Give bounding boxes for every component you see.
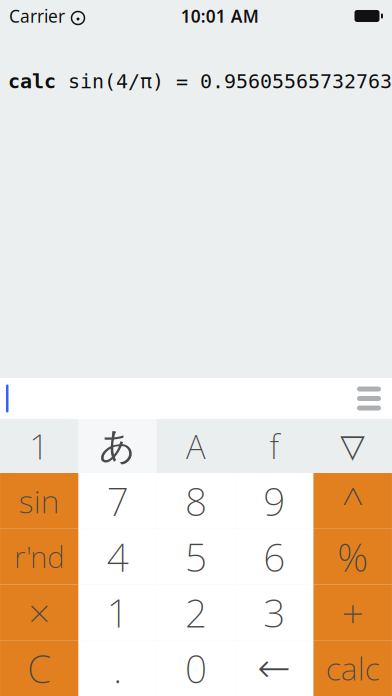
staticText: 0 (185, 642, 207, 694)
button[interactable]: ▽ (314, 419, 392, 473)
staticText: 10:01 AM (181, 4, 259, 27)
button[interactable]: f (235, 419, 314, 473)
button[interactable]: 6 (235, 529, 313, 585)
button[interactable]: 5 (157, 529, 235, 585)
button[interactable]: 4 (78, 529, 157, 585)
button[interactable]: Menu (346, 377, 392, 419)
staticText: Carrier (9, 4, 65, 27)
staticText: % (337, 531, 368, 582)
button[interactable]: 7 (78, 473, 157, 529)
staticText: 4 (107, 531, 129, 582)
button[interactable]: r'nd (0, 529, 78, 585)
staticText: calc (8, 70, 56, 93)
staticText: 9 (263, 475, 285, 526)
staticText: ▽ (340, 428, 365, 464)
button[interactable]: calc (313, 640, 392, 696)
staticText: sin(4/π) = 0.95605565732763 (56, 70, 392, 93)
button[interactable]: C (0, 640, 78, 696)
button[interactable]: 1 (0, 419, 78, 473)
staticText: 7 (107, 475, 129, 526)
button[interactable]: ← (235, 640, 313, 696)
staticText: 3 (263, 587, 285, 638)
staticText: 2 (185, 587, 207, 638)
button[interactable]: 0 (157, 640, 235, 696)
button[interactable]: × (0, 584, 78, 640)
staticText: + (342, 587, 364, 638)
staticText: 1 (29, 423, 49, 469)
button[interactable]: 8 (157, 473, 235, 529)
staticText: 8 (185, 475, 207, 526)
button[interactable]: sin (0, 473, 78, 529)
staticText: A (186, 424, 206, 468)
staticText: . (113, 642, 122, 694)
button[interactable]: 9 (235, 473, 313, 529)
staticText: f (269, 424, 279, 468)
staticText: C (27, 642, 51, 694)
staticText: 6 (263, 531, 285, 582)
button[interactable]: . (78, 640, 157, 696)
staticText: calc (326, 647, 380, 689)
button[interactable]: 3 (235, 584, 313, 640)
staticText: sin (19, 480, 60, 522)
staticText: あ (99, 424, 136, 468)
button[interactable]: 1 (78, 584, 157, 640)
staticText: r'nd (14, 537, 64, 576)
button[interactable]: 2 (157, 584, 235, 640)
button[interactable]: % (313, 529, 392, 585)
staticText: 1 (107, 587, 129, 638)
staticText: ^ (342, 475, 364, 526)
staticText: × (28, 587, 50, 638)
button[interactable]: A (157, 419, 235, 473)
button[interactable]: + (313, 584, 392, 640)
staticText: ← (257, 645, 291, 691)
button[interactable]: あ (78, 419, 157, 473)
staticText: 5 (185, 531, 207, 582)
button[interactable]: ^ (313, 473, 392, 529)
